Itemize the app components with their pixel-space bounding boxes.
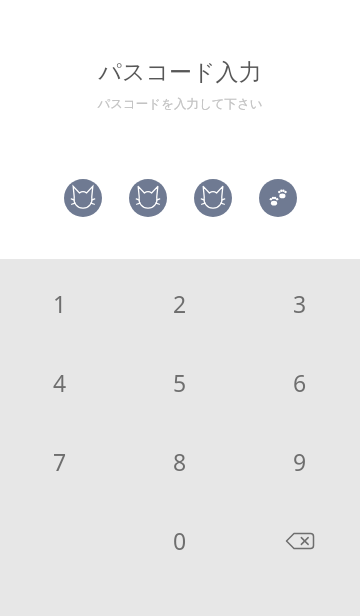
button[interactable]: 4: [0, 343, 120, 422]
staticText: 4: [53, 367, 67, 398]
staticText: 6: [293, 367, 307, 398]
button[interactable]: 2: [120, 264, 240, 343]
button[interactable]: 7: [0, 422, 120, 501]
other: Passcode empty: [194, 179, 232, 217]
button[interactable]: 0: [120, 501, 240, 580]
button[interactable]: 6: [240, 343, 360, 422]
other: Passcode empty: [64, 179, 102, 217]
staticText: 5: [173, 367, 187, 398]
button[interactable]: 3: [240, 264, 360, 343]
other: Delete: [285, 530, 315, 552]
staticText: 8: [173, 446, 187, 477]
staticText: パスコードを入力して下さい: [97, 96, 263, 112]
button[interactable]: 8: [120, 422, 240, 501]
staticText: 9: [293, 446, 307, 477]
staticText: 3: [293, 288, 307, 319]
staticText: 7: [53, 446, 67, 477]
button[interactable]: 1: [0, 264, 120, 343]
staticText: 0: [173, 525, 187, 556]
staticText: パスコード入力: [98, 58, 262, 87]
other: Passcode empty: [129, 179, 167, 217]
button[interactable]: 9: [240, 422, 360, 501]
staticText: 1: [53, 288, 67, 319]
button[interactable]: 5: [120, 343, 240, 422]
other: Passcode digit: [259, 179, 297, 217]
button[interactable]: Delete: [240, 501, 360, 580]
staticText: 2: [173, 288, 187, 319]
